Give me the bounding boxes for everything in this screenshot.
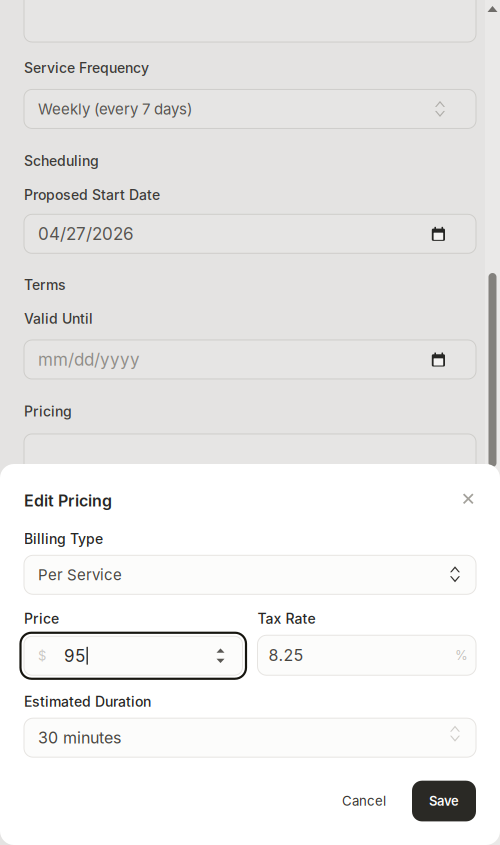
staticText: Tax Rate	[257, 610, 315, 627]
staticText: 04/27/2026	[38, 223, 134, 244]
staticText: Proposed Start Date	[24, 186, 160, 203]
button[interactable]: Save	[412, 781, 476, 821]
staticText: $	[38, 648, 46, 664]
staticText: Scheduling	[24, 152, 99, 169]
staticText: 30 minutes	[38, 728, 121, 747]
staticText: Billing Type	[24, 530, 103, 547]
staticText: mm/dd/yyyy	[38, 349, 140, 370]
button[interactable]: 30 minutes	[0, 718, 500, 757]
staticText: 8.25	[268, 646, 303, 665]
staticText: Pricing	[24, 403, 72, 420]
staticText: Valid Until	[24, 310, 93, 327]
button[interactable]: Close	[457, 487, 479, 510]
staticText: Weekly (every 7 days)	[38, 100, 192, 118]
staticText: Cancel	[342, 793, 386, 809]
staticText: Save	[429, 793, 459, 809]
staticText: Estimated Duration	[24, 693, 151, 710]
button[interactable]: Cancel	[329, 781, 399, 821]
staticText: Per Service	[38, 566, 122, 584]
staticText: Service Frequency	[24, 59, 149, 76]
staticText: 95	[64, 645, 85, 666]
button[interactable]: Per Service	[0, 555, 500, 594]
staticText: Edit Pricing	[24, 491, 112, 510]
staticText: Price	[24, 610, 59, 627]
staticText: Terms	[24, 276, 66, 293]
staticText: %	[455, 647, 468, 663]
